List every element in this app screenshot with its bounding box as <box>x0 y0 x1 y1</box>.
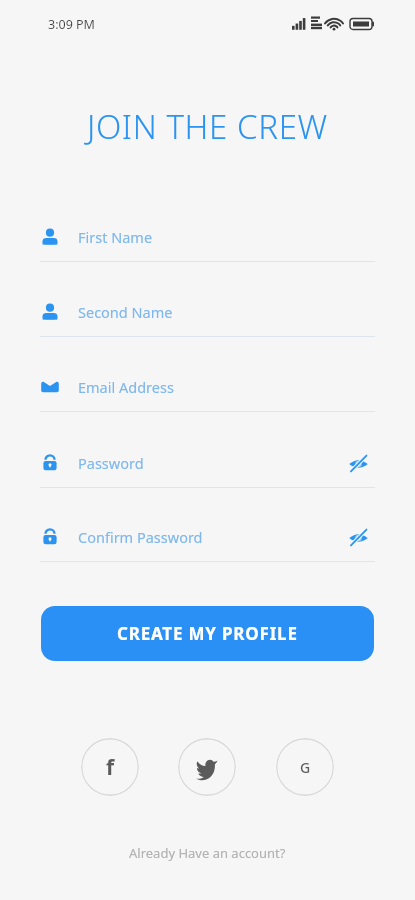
staticText: Confirm Password <box>78 527 203 547</box>
staticText: CREATE MY PROFILE <box>117 622 298 645</box>
button[interactable]: Already Have an account? <box>119 840 296 866</box>
button[interactable]: First Name <box>40 216 375 262</box>
button[interactable]: Email Address <box>40 366 375 412</box>
staticText: First Name <box>78 227 153 247</box>
staticText: Email Address <box>78 377 174 397</box>
button[interactable]: Sign in with Google <box>276 738 334 796</box>
button[interactable]: Show password <box>341 520 375 554</box>
staticText: 3:09 PM <box>48 16 95 33</box>
staticText: Password <box>78 453 144 473</box>
staticText: JOIN THE CREW <box>87 104 328 149</box>
button[interactable]: Confirm Password <box>40 516 375 562</box>
staticText: Second Name <box>78 302 173 322</box>
staticText: Already Have an account? <box>129 844 286 862</box>
button[interactable]: Sign in with Twitter <box>178 738 236 796</box>
button[interactable]: Sign in with Facebook <box>81 738 139 796</box>
button[interactable]: CREATE MY PROFILE <box>41 606 374 661</box>
staticText: G <box>300 758 311 777</box>
button[interactable]: Second Name <box>40 291 375 337</box>
staticText: f <box>106 753 115 782</box>
button[interactable]: Password <box>40 442 375 488</box>
button[interactable]: Show password <box>341 446 375 480</box>
